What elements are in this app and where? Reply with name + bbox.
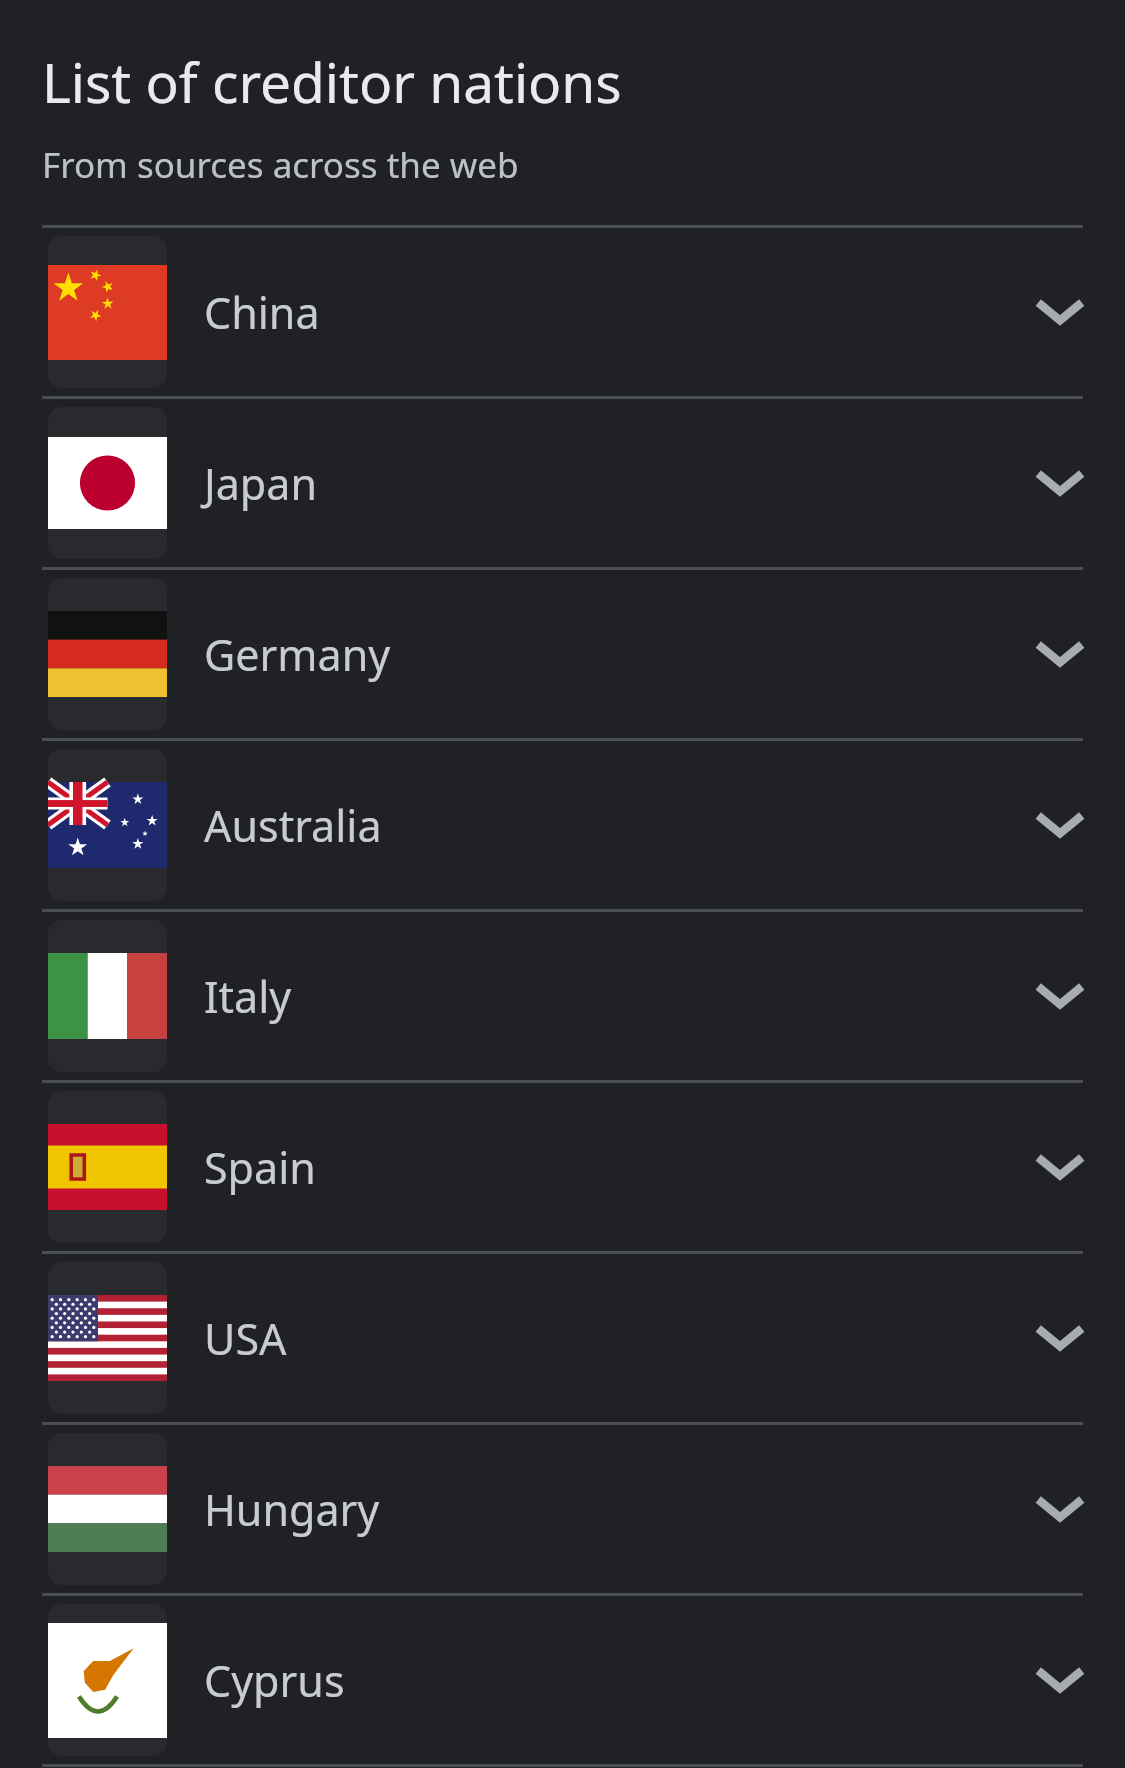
staticText: Hungary [204, 1480, 380, 1539]
staticText: List of creditor nations [42, 44, 622, 119]
other: Expand Germany [1039, 633, 1081, 675]
staticText: Cyprus [204, 1651, 345, 1710]
button[interactable]: Hungary [0, 1425, 1125, 1593]
staticText: From sources across the web [42, 141, 519, 189]
other: Expand Australia [1039, 804, 1081, 846]
other: Expand Italy [1039, 975, 1081, 1017]
staticText: China [204, 283, 320, 342]
button[interactable]: Cyprus [0, 1596, 1125, 1764]
button[interactable]: Italy [0, 912, 1125, 1080]
staticText: Australia [204, 796, 382, 855]
other: Expand Japan [1039, 462, 1081, 504]
button[interactable]: Germany [0, 570, 1125, 738]
other: Expand USA [1039, 1317, 1081, 1359]
staticText: Germany [204, 625, 391, 684]
other: Expand China [1039, 291, 1081, 333]
button[interactable]: Japan [0, 399, 1125, 567]
button[interactable]: Australia [0, 741, 1125, 909]
button[interactable]: China [0, 228, 1125, 396]
staticText: USA [204, 1309, 287, 1368]
other: Expand Spain [1039, 1146, 1081, 1188]
other: Expand Hungary [1039, 1488, 1081, 1530]
button[interactable]: Spain [0, 1083, 1125, 1251]
button[interactable]: USA [0, 1254, 1125, 1422]
staticText: Japan [204, 454, 318, 513]
staticText: Spain [204, 1138, 316, 1197]
other: Expand Cyprus [1039, 1659, 1081, 1701]
staticText: Italy [204, 967, 292, 1026]
